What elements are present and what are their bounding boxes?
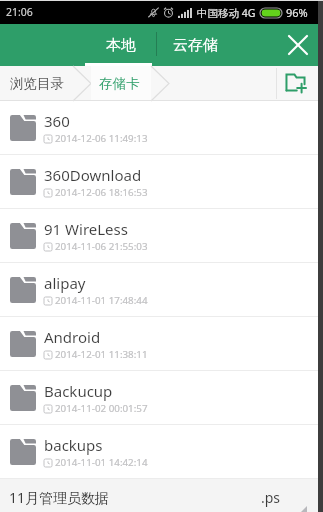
button[interactable]: 云存储: [157, 24, 233, 66]
staticText: 浏览目录: [10, 75, 64, 92]
staticText: .ps: [261, 488, 281, 507]
button[interactable]: New folder: [277, 66, 313, 101]
button[interactable]: Close: [283, 30, 313, 60]
button[interactable]: 360Download: [0, 155, 323, 209]
button[interactable]: Backucup: [0, 371, 323, 425]
staticText: 2014-11-01 14:42:14: [55, 456, 148, 469]
button[interactable]: 360: [0, 101, 323, 155]
staticText: 2014-12-06 18:16:53: [55, 186, 148, 199]
button[interactable]: 本地: [85, 24, 156, 66]
staticText: 360Download: [44, 165, 142, 185]
staticText: 96%: [286, 5, 308, 20]
staticText: 2014-12-01 11:38:11: [55, 348, 148, 361]
staticText: 云存储: [173, 36, 218, 55]
staticText: Backucup: [44, 381, 113, 401]
staticText: 中国移动 4G: [197, 6, 256, 20]
button[interactable]: backups: [0, 425, 323, 479]
staticText: 2014-11-01 17:48:44: [55, 294, 148, 307]
staticText: 2014-11-06 21:55:03: [55, 240, 148, 253]
button[interactable]: alipay: [0, 263, 323, 317]
button[interactable]: 存储卡: [91, 66, 151, 101]
staticText: 21:06: [6, 5, 33, 19]
staticText: Android: [44, 327, 101, 347]
staticText: 91 WireLess: [44, 219, 128, 239]
staticText: 11月管理员数据: [9, 488, 110, 507]
staticText: alipay: [44, 273, 86, 293]
button[interactable]: Android: [0, 317, 323, 371]
staticText: 存储卡: [99, 75, 140, 92]
staticText: 本地: [106, 36, 136, 55]
staticText: 360: [44, 111, 70, 131]
staticText: 2014-12-06 11:49:13: [55, 132, 148, 145]
staticText: 2014-11-02 00:01:57: [55, 402, 148, 415]
button[interactable]: 浏览目录: [0, 66, 76, 101]
button[interactable]: 91 WireLess: [0, 209, 323, 263]
staticText: backups: [44, 435, 103, 455]
